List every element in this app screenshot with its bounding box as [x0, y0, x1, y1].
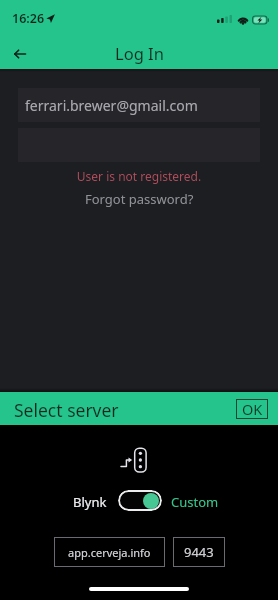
staticText: Custom [171, 493, 219, 511]
button[interactable]: OK [236, 399, 268, 419]
staticText: OK [242, 399, 263, 419]
staticText: Blynk [73, 493, 107, 511]
button[interactable]: ferrari.brewer@gmail.com [18, 88, 260, 122]
button[interactable]: 9443 [173, 537, 225, 567]
staticText: User is not registered. [0, 168, 278, 184]
staticText: app.cerveja.info [68, 545, 151, 560]
staticText: 9443 [184, 543, 214, 561]
button[interactable]: Back [2, 40, 38, 68]
staticText: Log In [115, 42, 164, 64]
staticText: ferrari.brewer@gmail.com [25, 96, 198, 115]
staticText: Select server [14, 398, 119, 422]
staticText: 16:26 [12, 10, 45, 27]
button[interactable]: Forgot password? [0, 188, 278, 210]
button[interactable]: app.cerveja.info [54, 537, 165, 567]
button[interactable]: Use custom server [118, 490, 162, 511]
staticText: Forgot password? [85, 190, 194, 208]
